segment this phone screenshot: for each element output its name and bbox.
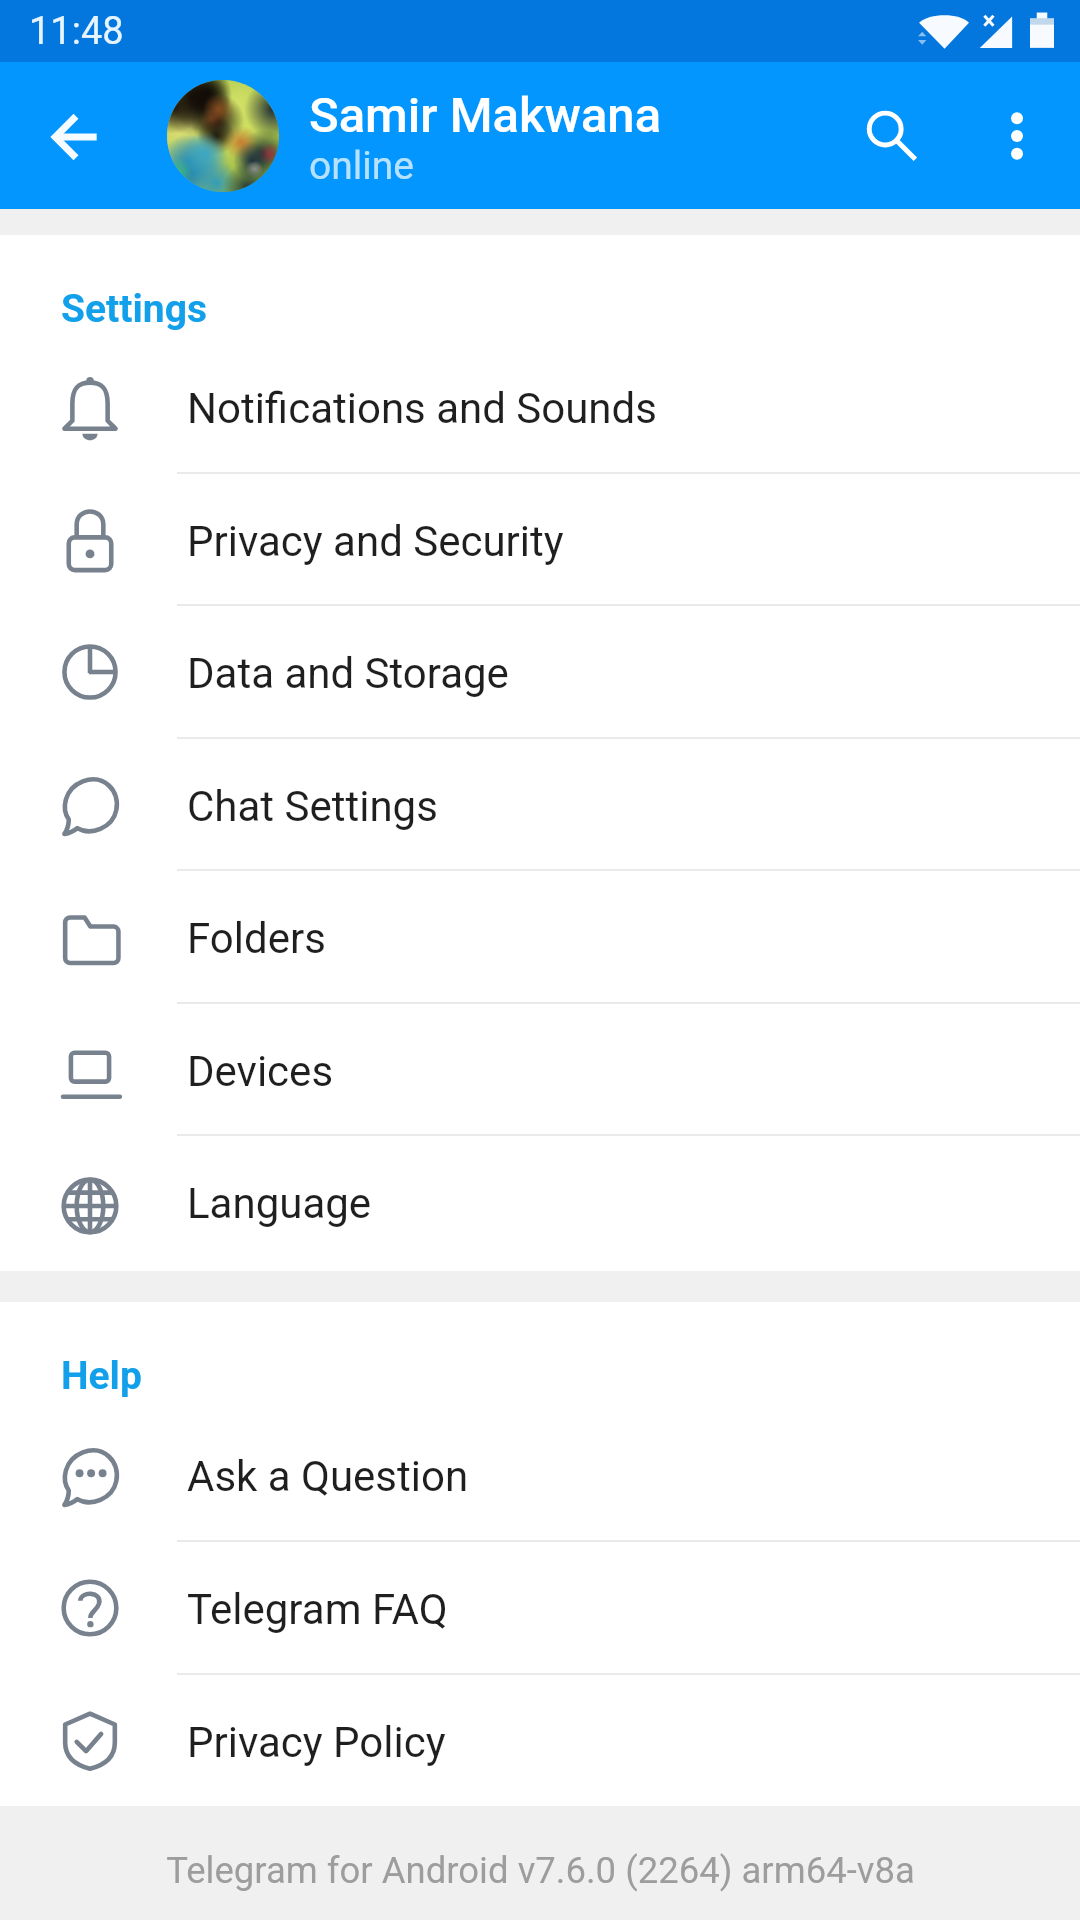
staticText: Privacy and Security (187, 517, 564, 566)
button[interactable]: Language (0, 1135, 1080, 1268)
button[interactable]: Profile photo (167, 80, 279, 192)
button[interactable]: Data and Storage (0, 605, 1080, 738)
button[interactable]: Search (836, 81, 946, 191)
button[interactable]: Telegram FAQ (0, 1541, 1080, 1674)
staticText: Settings (61, 286, 207, 332)
staticText: Data and Storage (187, 649, 509, 698)
staticText: Language (187, 1179, 372, 1228)
staticText: Chat Settings (187, 782, 438, 831)
button[interactable]: Privacy and Security (0, 473, 1080, 605)
button[interactable]: Back (16, 62, 136, 209)
button[interactable]: Chat Settings (0, 738, 1080, 870)
staticText: Devices (187, 1047, 334, 1096)
button[interactable]: Folders (0, 870, 1080, 1003)
staticText: Notifications and Sounds (187, 384, 657, 433)
staticText: Samir Makwana (309, 87, 662, 144)
staticText: Telegram FAQ (187, 1585, 448, 1634)
staticText: Privacy Policy (187, 1718, 446, 1767)
staticText: online (309, 143, 414, 189)
staticText: Folders (187, 914, 326, 963)
button[interactable]: Ask a Question (0, 1408, 1080, 1541)
staticText: Ask a Question (187, 1452, 469, 1501)
button[interactable]: Notifications and Sounds (0, 340, 1080, 473)
button[interactable]: More options (962, 81, 1072, 191)
staticText: Telegram for Android v7.6.0 (2264) arm64… (166, 1849, 915, 1892)
button[interactable]: Devices (0, 1003, 1080, 1135)
staticText: 11:48 (29, 9, 124, 54)
staticText: Help (61, 1353, 142, 1399)
button[interactable]: Privacy Policy (0, 1674, 1080, 1806)
